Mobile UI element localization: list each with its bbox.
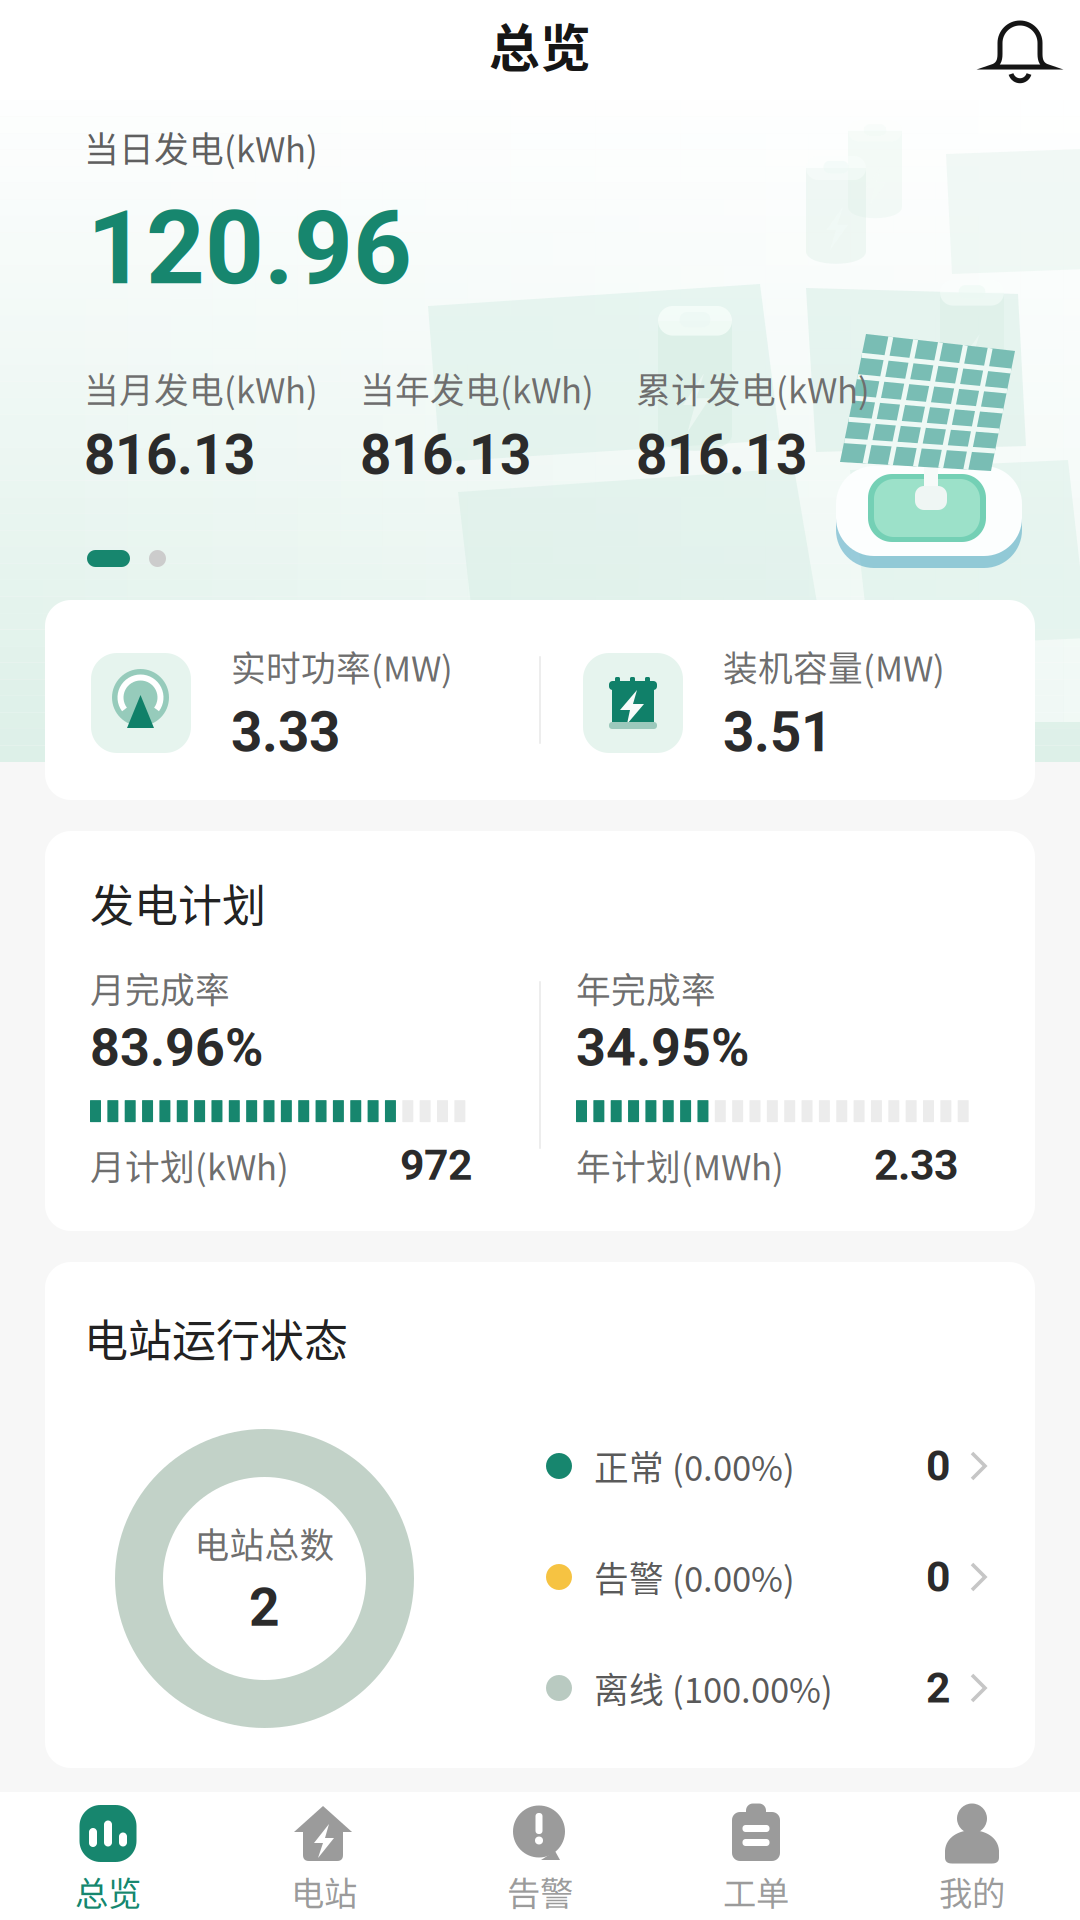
- staticText: 我的: [939, 1867, 1005, 1915]
- staticText: 972: [400, 1140, 472, 1190]
- staticText: 83.96%: [90, 1017, 263, 1078]
- button[interactable]: Notifications: [960, 0, 1080, 104]
- staticText: 实时功率(MW): [231, 641, 453, 692]
- staticText: 电站总数: [194, 1518, 334, 1568]
- staticText: 总览: [489, 8, 591, 82]
- staticText: 3.33: [231, 701, 340, 765]
- button[interactable]: 离线 (100.00%): [546, 1657, 990, 1719]
- button[interactable]: 我的: [864, 1792, 1080, 1920]
- button[interactable]: 工单: [648, 1792, 864, 1920]
- staticText: 2: [249, 1576, 280, 1639]
- staticText: 34.95%: [576, 1017, 749, 1078]
- staticText: 816.13: [84, 423, 255, 487]
- button[interactable]: 告警 (0.00%): [546, 1546, 990, 1608]
- button[interactable]: 告警: [432, 1792, 648, 1920]
- staticText: 正常 (0.00%): [594, 1441, 795, 1491]
- staticText: 电站: [291, 1867, 357, 1915]
- staticText: 月计划(kWh): [90, 1140, 289, 1190]
- staticText: 3.51: [723, 701, 832, 765]
- staticText: 年完成率: [576, 963, 716, 1013]
- button[interactable]: 电站: [216, 1792, 432, 1920]
- staticText: 当日发电(kWh): [84, 122, 318, 172]
- staticText: 2.33: [874, 1140, 958, 1190]
- staticText: 电站运行状态: [84, 1306, 348, 1370]
- staticText: 月完成率: [90, 963, 230, 1013]
- staticText: 告警 (0.00%): [594, 1552, 795, 1602]
- staticText: 年计划(MWh): [576, 1140, 784, 1190]
- staticText: 120.96: [87, 188, 412, 308]
- staticText: 工单: [723, 1867, 789, 1915]
- staticText: 累计发电(kWh): [636, 363, 870, 413]
- staticText: 离线 (100.00%): [594, 1663, 833, 1713]
- staticText: 816.13: [636, 423, 807, 487]
- staticText: 总览: [75, 1867, 141, 1915]
- staticText: 发电计划: [90, 871, 266, 935]
- staticText: 0: [926, 1552, 950, 1602]
- button[interactable]: 总览: [0, 1792, 216, 1920]
- staticText: 当月发电(kWh): [84, 363, 318, 413]
- staticText: 当年发电(kWh): [360, 363, 594, 413]
- button[interactable]: 正常 (0.00%): [546, 1435, 990, 1497]
- staticText: 告警: [507, 1867, 573, 1915]
- staticText: 0: [926, 1441, 950, 1491]
- staticText: 2: [926, 1663, 950, 1713]
- staticText: 816.13: [360, 423, 531, 487]
- staticText: 装机容量(MW): [723, 641, 945, 692]
